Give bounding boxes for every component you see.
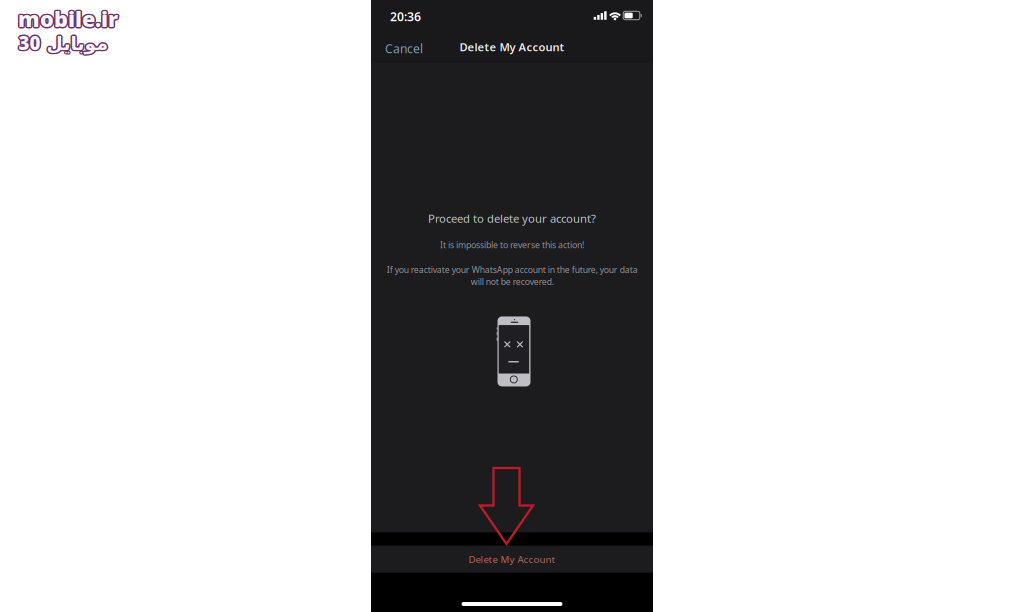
staticText: موبایل 30: [19, 29, 109, 54]
button[interactable]: Delete My Account: [371, 546, 653, 573]
staticText: If you reactivate your WhatsApp account …: [386, 264, 637, 287]
staticText: موبایل 30: [19, 30, 109, 55]
button[interactable]: Cancel: [371, 31, 443, 63]
staticText: Delete My Account: [468, 552, 555, 566]
staticText: موبایل 30: [19, 31, 109, 56]
staticText: mobile.ir: [19, 3, 119, 32]
staticText: mobile.ir: [19, 4, 119, 33]
staticText: mobile.ir: [17, 4, 117, 33]
staticText: mobile.ir: [17, 5, 117, 34]
staticText: موبایل 30: [17, 30, 107, 55]
staticText: Cancel: [385, 40, 423, 57]
staticText: موبایل 30: [17, 31, 107, 56]
staticText: mobile.ir: [18, 5, 118, 35]
staticText: mobile.ir: [17, 3, 117, 32]
staticText: موبایل 30: [17, 29, 107, 54]
staticText: mobile.ir: [18, 3, 118, 32]
staticText: Proceed to delete your account?: [428, 211, 596, 226]
staticText: موبایل 30: [18, 31, 108, 57]
staticText: 20:36: [390, 8, 421, 25]
staticText: Delete My Account: [459, 39, 564, 55]
staticText: It is impossible to reverse this action!: [440, 239, 584, 251]
staticText: موبایل 30: [18, 29, 108, 54]
staticText: موبایل 30: [18, 30, 108, 55]
staticText: mobile.ir: [19, 5, 119, 34]
staticText: mobile.ir: [18, 4, 118, 33]
